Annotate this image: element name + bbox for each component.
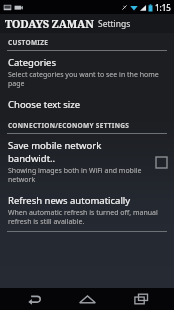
- staticText: Choose text size: [8, 98, 81, 111]
- staticText: Categories: [8, 56, 56, 69]
- staticText: Save mobile network bandwidt..: [8, 139, 150, 165]
- staticText: Settings: [98, 18, 131, 30]
- staticText: CONNECTION/ECONOMY SETTINGS: [8, 121, 130, 130]
- staticText: Select categories you want to see in the…: [8, 70, 168, 88]
- staticText: 1:15: [155, 2, 171, 13]
- button[interactable]: Home: [67, 288, 107, 310]
- button[interactable]: Categories: [0, 51, 174, 93]
- staticText: Refresh news automatically: [8, 194, 131, 207]
- staticText: Showing images both in WiFi and mobile n…: [8, 166, 150, 184]
- button[interactable]: Back: [14, 288, 54, 310]
- button[interactable]: Save mobile network bandwidth toggle: [154, 155, 168, 169]
- button[interactable]: Choose text size: [0, 93, 174, 116]
- button[interactable]: Recent apps: [121, 288, 161, 310]
- staticText: When automatic refresh is turned off, ma…: [8, 208, 168, 226]
- button[interactable]: Refresh news automatically: [0, 189, 174, 231]
- button[interactable]: Save mobile network bandwidt..: [0, 134, 174, 189]
- staticText: TODAYS ZAMAN: [5, 16, 94, 31]
- staticText: CUSTOMIZE: [8, 38, 49, 47]
